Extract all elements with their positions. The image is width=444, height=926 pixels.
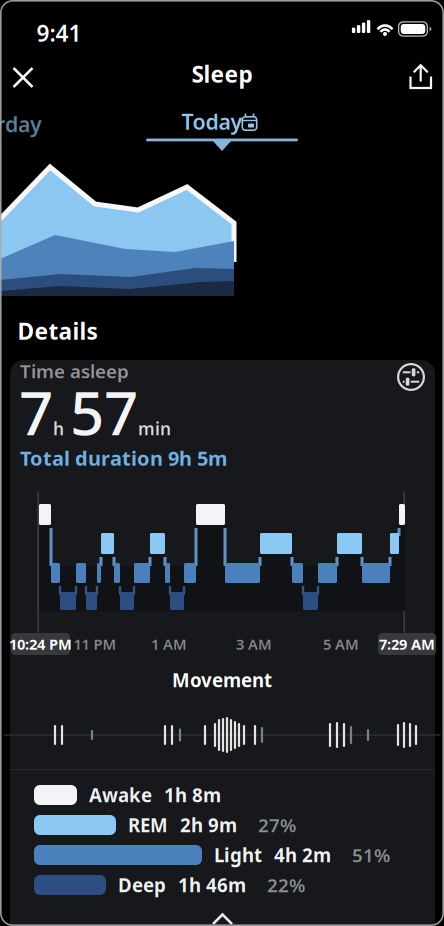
staticText: Total duration 9h 5m [20,445,228,471]
button[interactable] [1,55,45,99]
staticText: h [53,417,64,440]
staticText: Light [214,843,262,867]
staticText: 7:29 AM [379,634,435,654]
staticText: 11 PM [73,634,116,654]
staticText: Details [17,316,97,346]
staticText: 5 AM [323,634,359,654]
staticText: 3 AM [236,634,272,654]
staticText: Time asleep [20,359,129,383]
button[interactable]: Today [142,105,302,153]
button[interactable] [394,360,428,394]
staticText: 10:24 PM [9,634,72,654]
button[interactable] [205,904,239,926]
staticText: Deep [118,873,166,897]
button[interactable]: rday [0,110,42,138]
staticText: 4h 2m [274,843,331,867]
staticText: 1h 46m [178,873,246,897]
staticText: Movement [172,668,272,692]
staticText: 7 [19,372,53,452]
staticText: Awake [89,783,152,807]
staticText: 22% [267,873,305,897]
staticText: 51% [352,843,390,867]
staticText: 1 AM [151,634,187,654]
staticText: min [138,417,171,440]
staticText: 27% [258,813,296,837]
staticText: 9:41 [36,18,81,48]
staticText: Today [181,107,242,136]
staticText: 57 [70,372,138,452]
staticText: 1h 8m [164,783,221,807]
staticText: 2h 9m [180,813,237,837]
staticText: REM [128,813,168,837]
staticText: Sleep [191,59,252,89]
staticText: rday [0,110,42,138]
button[interactable] [399,55,443,99]
